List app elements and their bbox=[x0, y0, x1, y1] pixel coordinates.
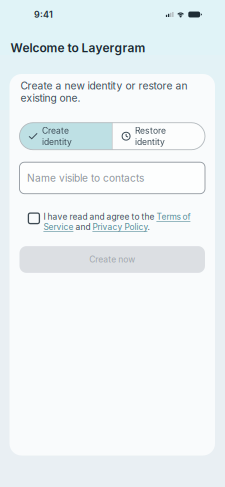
staticText: Create now bbox=[89, 254, 135, 265]
button[interactable]: Restore bbox=[113, 123, 205, 150]
staticText: Name visible to contacts bbox=[27, 172, 144, 184]
staticText: I have read and agree to the Terms of Se… bbox=[43, 212, 190, 232]
staticText: 9:41 bbox=[34, 9, 53, 20]
button[interactable]: I have read and agree to the Terms of Se… bbox=[28, 212, 204, 232]
staticText: identity bbox=[135, 137, 165, 147]
button[interactable]: Name visible to contacts bbox=[19, 162, 205, 194]
staticText: Welcome to Layergram bbox=[10, 40, 145, 55]
staticText: Create bbox=[42, 125, 69, 136]
button[interactable]: Create now bbox=[19, 246, 205, 273]
button[interactable]: Create bbox=[19, 123, 112, 150]
staticText: identity bbox=[42, 137, 72, 147]
staticText: Create a new identity or restore an exis… bbox=[20, 79, 187, 104]
staticText: Restore bbox=[135, 125, 166, 136]
